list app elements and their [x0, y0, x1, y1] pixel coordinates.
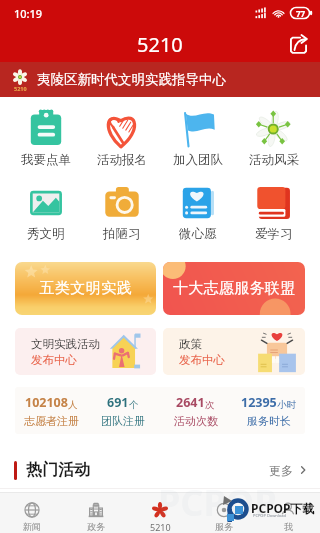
staticText: 次	[205, 399, 215, 411]
button[interactable]: 5210	[128, 494, 192, 533]
staticText: PCPOP下载	[251, 500, 315, 516]
button[interactable]: 政策	[163, 328, 305, 375]
staticText: 文明实践活动	[31, 337, 100, 351]
button[interactable]: 活动风采	[236, 110, 312, 168]
staticText: 活动风采	[249, 152, 299, 168]
staticText: 服务	[215, 521, 233, 532]
staticText: 拍陋习	[103, 226, 141, 242]
staticText: 发布中心	[31, 353, 77, 367]
button[interactable]: 我	[256, 494, 320, 532]
button[interactable]: 微心愿	[160, 184, 236, 242]
staticText: 12395	[241, 394, 277, 411]
staticText: 夷陵区新时代文明实践指导中心	[37, 71, 226, 88]
staticText: 爱学习	[255, 226, 293, 242]
button[interactable]: 政务	[64, 494, 128, 532]
button[interactable]: 文明实践活动	[15, 328, 156, 375]
staticText: 志愿者注册	[24, 414, 79, 428]
staticText: 秀文明	[27, 226, 65, 242]
button[interactable]: 爱学习	[236, 184, 312, 242]
staticText: 热门活动	[26, 460, 90, 480]
staticText: 5210	[137, 31, 183, 58]
button[interactable]: 我要点单	[8, 110, 84, 168]
staticText: 活动次数	[174, 414, 218, 428]
staticText: PCPOP	[158, 478, 277, 527]
button[interactable]: 新闻	[0, 494, 64, 532]
staticText: 77	[296, 8, 306, 19]
staticText: 个	[129, 399, 139, 411]
staticText: 服务时长	[247, 414, 291, 428]
staticText: 活动报名	[97, 152, 147, 168]
button[interactable]: Share	[283, 29, 313, 59]
staticText: 五类文明实践	[39, 279, 132, 298]
staticText: 人	[68, 399, 78, 411]
staticText: 10:19	[14, 6, 43, 21]
staticText: 团队注册	[101, 414, 145, 428]
staticText: 我要点单	[21, 152, 71, 168]
staticText: 政务	[87, 521, 105, 532]
staticText: 加入团队	[173, 152, 223, 168]
button[interactable]: 十大志愿服务联盟	[163, 262, 305, 315]
button[interactable]: 秀文明	[8, 184, 84, 242]
button[interactable]: 拍陋习	[84, 184, 160, 242]
staticText: 政策	[179, 337, 202, 351]
staticText: 小时	[277, 399, 296, 411]
staticText: PCPOP Download	[253, 513, 286, 518]
staticText: 更多	[269, 463, 293, 478]
staticText: 691	[107, 394, 129, 411]
button[interactable]: 活动报名	[84, 110, 160, 168]
staticText: 新闻	[23, 521, 41, 532]
button[interactable]: 加入团队	[160, 110, 236, 168]
staticText: 发布中心	[179, 353, 225, 367]
button[interactable]: 热门活动	[0, 452, 320, 488]
staticText: 2641	[176, 394, 205, 411]
staticText: 5210	[150, 521, 171, 533]
button[interactable]: 服务	[192, 494, 256, 532]
button[interactable]: 五类文明实践	[15, 262, 156, 315]
staticText: 十大志愿服务联盟	[173, 279, 296, 298]
staticText: 102108	[25, 394, 68, 411]
staticText: 5210	[14, 85, 27, 92]
staticText: 我	[284, 521, 293, 532]
staticText: 微心愿	[179, 226, 217, 242]
